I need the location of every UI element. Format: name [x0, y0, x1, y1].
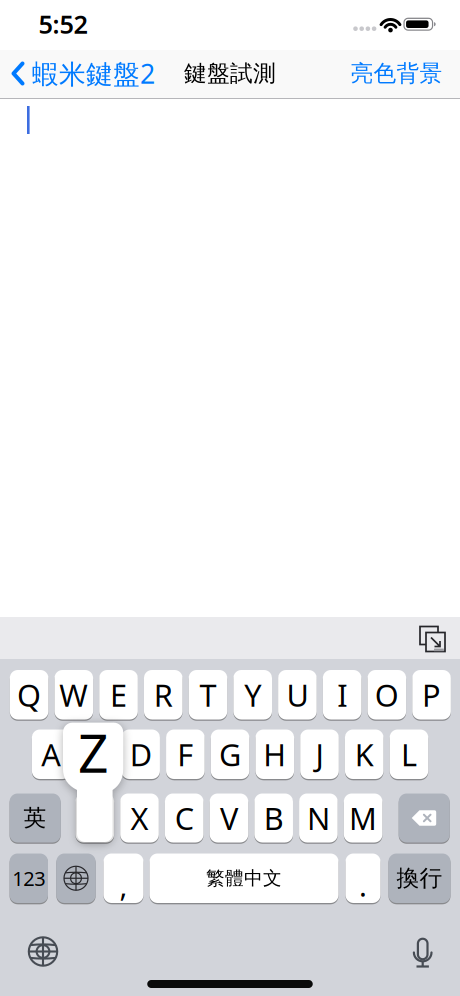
staticText: Q	[17, 674, 41, 715]
staticText: F	[177, 734, 193, 775]
button[interactable]: Dictate	[409, 937, 437, 968]
button[interactable]: H	[255, 728, 294, 780]
staticText: K	[355, 734, 374, 775]
staticText: D	[130, 734, 152, 775]
button[interactable]: I	[323, 669, 361, 720]
staticText: W	[59, 674, 88, 715]
button[interactable]: N	[299, 792, 338, 843]
staticText: 英	[24, 804, 47, 832]
button[interactable]: V	[210, 792, 248, 843]
button[interactable]: W	[54, 669, 93, 720]
button[interactable]: J	[300, 728, 339, 780]
staticText: 123	[12, 865, 45, 892]
button[interactable]: P	[412, 669, 451, 720]
staticText: M	[349, 798, 377, 838]
button[interactable]: Delete	[399, 792, 450, 843]
button[interactable]: ,	[103, 852, 143, 904]
button[interactable]: 英	[10, 792, 61, 843]
button[interactable]: L	[390, 728, 428, 780]
staticText: T	[199, 674, 216, 715]
button[interactable]: B	[254, 792, 293, 843]
button[interactable]: D	[121, 728, 160, 780]
button[interactable]: R	[144, 669, 183, 720]
button[interactable]: T	[189, 669, 227, 720]
button[interactable]: F	[166, 728, 205, 780]
staticText: E	[110, 674, 127, 715]
button[interactable]: Z	[75, 792, 114, 843]
button[interactable]: Y	[233, 669, 272, 720]
staticText: 鍵盤試測	[184, 60, 276, 87]
staticText: P	[422, 674, 441, 715]
button[interactable]: Paste	[419, 625, 445, 651]
button[interactable]: 亮色背景	[350, 60, 442, 87]
staticText: H	[263, 734, 286, 775]
button[interactable]: Next keyboard	[27, 935, 59, 968]
button[interactable]: U	[278, 669, 317, 720]
button[interactable]: 換行	[388, 852, 450, 904]
button[interactable]: K	[345, 728, 383, 780]
staticText: .	[359, 866, 367, 905]
staticText: Z	[78, 717, 109, 787]
staticText: A	[41, 734, 61, 775]
staticText: C	[175, 798, 194, 838]
staticText: X	[130, 798, 148, 838]
button[interactable]: 繁體中文	[149, 852, 338, 904]
staticText: 亮色背景	[350, 60, 442, 87]
button[interactable]: Next keyboard	[56, 852, 96, 904]
staticText: Y	[244, 674, 261, 715]
staticText: R	[154, 674, 173, 715]
staticText: V	[220, 798, 238, 838]
staticText: B	[264, 798, 284, 838]
staticText: 5:52	[38, 7, 87, 41]
staticText: L	[401, 734, 417, 775]
button[interactable]: G	[211, 728, 249, 780]
button[interactable]: Q	[10, 669, 48, 720]
staticText: G	[219, 734, 241, 775]
button[interactable]: S	[77, 728, 115, 780]
staticText: 換行	[396, 864, 442, 892]
button[interactable]: E	[99, 669, 138, 720]
button[interactable]: M	[344, 792, 382, 843]
staticText: N	[307, 798, 330, 838]
staticText: 蝦米鍵盤2	[32, 56, 155, 91]
button[interactable]: O	[368, 669, 406, 720]
button[interactable]: 123	[10, 852, 48, 904]
button[interactable]: X	[120, 792, 159, 843]
staticText: I	[337, 674, 347, 715]
staticText: ,	[119, 866, 127, 905]
button[interactable]: A	[32, 728, 70, 780]
staticText: U	[286, 674, 308, 715]
staticText: 繁體中文	[206, 867, 282, 890]
button[interactable]: C	[165, 792, 203, 843]
staticText: O	[375, 674, 399, 715]
button[interactable]: .	[345, 852, 380, 904]
staticText: S	[87, 734, 104, 775]
staticText: J	[315, 734, 323, 775]
button[interactable]: 蝦米鍵盤2	[11, 56, 155, 91]
